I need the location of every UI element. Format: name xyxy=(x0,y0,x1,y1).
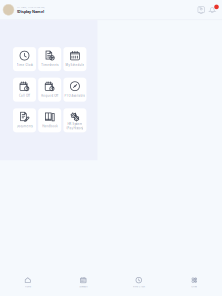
button[interactable]: Notifications xyxy=(207,5,217,14)
staticText: Timesheets xyxy=(41,63,58,67)
button[interactable]: Time Clock xyxy=(111,274,166,291)
button[interactable]: HR System xyxy=(63,108,86,132)
staticText: [Display Name] xyxy=(17,9,44,14)
button[interactable]: PTO Available xyxy=(63,78,86,102)
button[interactable]: My Schedule xyxy=(63,47,86,71)
staticText: Call Off xyxy=(19,94,30,97)
button[interactable]: Schedule xyxy=(55,274,111,291)
staticText: Time Clock xyxy=(16,63,32,67)
staticText: Time Clock xyxy=(133,285,145,288)
button[interactable]: Time Clock xyxy=(13,47,36,71)
staticText: Handbook xyxy=(42,124,57,128)
button[interactable]: Handbook xyxy=(38,108,61,132)
button[interactable]: Timesheets xyxy=(38,47,61,71)
staticText: My Schedule xyxy=(65,63,84,67)
button[interactable]: Request Off xyxy=(38,78,61,102)
button[interactable]: Documents xyxy=(13,108,36,132)
staticText: Hi there, Nice to see you, xyxy=(17,5,45,9)
button[interactable]: Other xyxy=(166,274,222,291)
staticText: HR System xyxy=(67,122,82,126)
button[interactable]: Call Off xyxy=(13,78,36,102)
staticText: Schedule xyxy=(79,285,87,288)
staticText: Documents xyxy=(16,124,32,128)
button[interactable]: My ID card xyxy=(196,5,206,14)
staticText: Other xyxy=(191,285,197,288)
staticText: Request Off xyxy=(41,94,58,97)
staticText: Home xyxy=(25,285,31,288)
staticText: (Pay History) xyxy=(66,126,83,130)
button[interactable]: Home xyxy=(0,274,55,291)
staticText: PTO Available xyxy=(64,94,85,97)
